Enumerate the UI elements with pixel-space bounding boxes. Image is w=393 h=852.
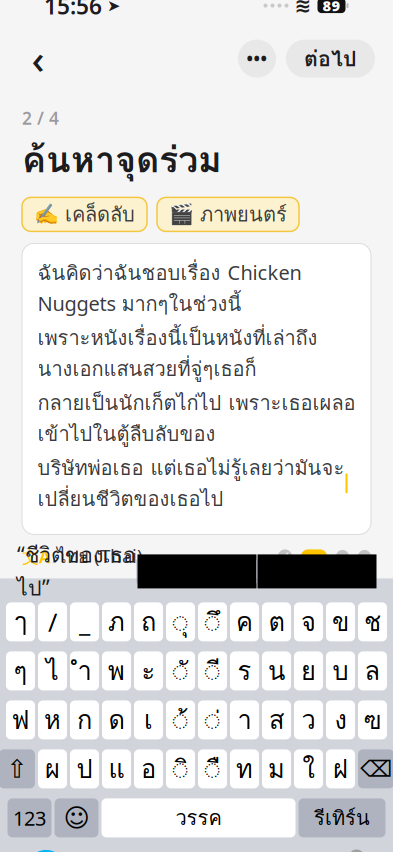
button[interactable]: ร xyxy=(230,651,259,690)
staticText: 2 / 4 xyxy=(22,107,59,130)
button[interactable]: ส xyxy=(262,700,291,739)
staticText: ต่อไป xyxy=(304,42,357,75)
staticText: เคล็ดลับ xyxy=(65,199,135,230)
button[interactable]: More options xyxy=(238,40,276,78)
staticText: พ xyxy=(108,651,125,691)
staticText: อ xyxy=(141,749,156,789)
button[interactable]: ก xyxy=(70,700,99,739)
button[interactable]: บ xyxy=(326,651,355,690)
button[interactable]: ำ xyxy=(70,651,99,690)
staticText: ำ xyxy=(77,651,91,691)
staticText: ภ xyxy=(108,602,125,642)
staticText: กลายเป็นนักเก็ตไก่ไป เพราะเธอเผลอเข้าไปใ… xyxy=(37,387,355,449)
button[interactable]: พ xyxy=(102,651,131,690)
button[interactable]: Shift xyxy=(0,749,35,788)
button[interactable]: Switch keyboard xyxy=(24,845,68,852)
button[interactable]: แ xyxy=(102,749,131,788)
button[interactable]: ด xyxy=(102,700,131,739)
button[interactable]: ภ xyxy=(102,602,131,641)
button[interactable]: ท xyxy=(230,749,259,788)
button[interactable]: วรรค xyxy=(101,798,295,837)
button[interactable]: Delete xyxy=(358,749,393,788)
staticText: ว xyxy=(301,700,315,740)
button[interactable]: ะ xyxy=(134,651,163,690)
button[interactable]: ว xyxy=(294,700,323,739)
button[interactable]: ล xyxy=(358,651,387,690)
button[interactable]: เ xyxy=(134,700,163,739)
staticText: บ xyxy=(332,651,348,691)
button[interactable]: ฝ xyxy=(326,749,355,788)
button[interactable]: 🎬 xyxy=(157,197,299,231)
button[interactable]: Emoji xyxy=(54,798,98,837)
button[interactable]: ิ xyxy=(166,749,195,788)
button[interactable]: อ xyxy=(134,749,163,788)
button[interactable]: ย xyxy=(294,651,323,690)
staticText: วรรค xyxy=(175,802,221,833)
staticText: ื xyxy=(204,749,220,789)
staticText: ้ xyxy=(172,700,188,740)
staticText: 123 xyxy=(13,805,46,831)
button[interactable]: น xyxy=(262,651,291,690)
button[interactable]: ี xyxy=(198,651,227,690)
button[interactable]: / xyxy=(38,602,67,641)
button[interactable]: ข xyxy=(326,602,355,641)
staticText: ก xyxy=(77,700,92,740)
button[interactable]: ห xyxy=(38,700,67,739)
staticText: ด xyxy=(108,700,124,740)
staticText: 文A xyxy=(22,545,51,568)
button[interactable]: ๆ xyxy=(6,651,35,690)
staticText: _ xyxy=(79,605,90,639)
staticText: ม xyxy=(268,749,285,789)
staticText: ท xyxy=(236,749,253,789)
button[interactable]: ั xyxy=(166,651,195,690)
button[interactable]: ป xyxy=(70,749,99,788)
staticText: ข xyxy=(332,602,349,642)
button[interactable]: Suggestion xyxy=(137,554,256,588)
staticText: ☺ xyxy=(63,803,89,832)
button[interactable]: ต xyxy=(262,602,291,641)
button[interactable]: รีเทิร์น xyxy=(298,798,385,837)
staticText: บริษัทพ่อเธอ แต่เธอไม่รู้เลยว่ามันจะเปลี… xyxy=(37,452,344,514)
staticText: “ชีวิตของเธอไป” xyxy=(17,538,136,604)
button[interactable]: ุ xyxy=(166,602,195,641)
button[interactable]: า xyxy=(230,700,259,739)
staticText: ร xyxy=(237,651,251,691)
button[interactable]: “ชีวิตของเธอไป” xyxy=(16,554,136,588)
button[interactable]: ฃ xyxy=(358,700,387,739)
button[interactable]: Back xyxy=(18,39,58,79)
button[interactable]: ผ xyxy=(38,749,67,788)
button[interactable]: 123 xyxy=(7,798,51,837)
button[interactable]: Suggestion xyxy=(257,554,376,588)
button[interactable]: ไ xyxy=(38,651,67,690)
button[interactable]: ต่อไป xyxy=(286,40,375,78)
button[interactable]: ✍️ xyxy=(22,197,147,231)
staticText: ⇧ xyxy=(6,754,27,783)
staticText: ะ xyxy=(141,651,155,691)
button[interactable]: Dictate xyxy=(325,845,369,852)
button[interactable]: _ xyxy=(70,602,99,641)
button[interactable]: 文A xyxy=(22,542,143,571)
staticText: 🌐 xyxy=(26,849,66,852)
button[interactable]: ๅ xyxy=(6,602,35,641)
button[interactable]: ค xyxy=(230,602,259,641)
button[interactable]: ฉันคิดว่าฉันชอบเรื่อง Chicken Nuggets มา… xyxy=(22,243,371,534)
button[interactable]: ถ xyxy=(134,602,163,641)
button[interactable]: ม xyxy=(262,749,291,788)
staticText: ั xyxy=(172,651,188,691)
staticText: ่ xyxy=(204,700,220,740)
button[interactable]: ื xyxy=(198,749,227,788)
button[interactable]: ึ xyxy=(198,602,227,641)
button[interactable]: ใ xyxy=(294,749,323,788)
staticText: เ xyxy=(144,700,153,740)
button[interactable]: ้ xyxy=(166,700,195,739)
button[interactable]: ่ xyxy=(198,700,227,739)
staticText: ฟ xyxy=(11,700,29,740)
button[interactable]: จ xyxy=(294,602,323,641)
button[interactable]: ช xyxy=(358,602,387,641)
staticText: ห xyxy=(44,700,61,740)
staticText: ง xyxy=(334,700,346,740)
staticText: น xyxy=(268,651,285,691)
staticText: า xyxy=(237,700,251,740)
button[interactable]: ฟ xyxy=(6,700,35,739)
button[interactable]: ง xyxy=(326,700,355,739)
